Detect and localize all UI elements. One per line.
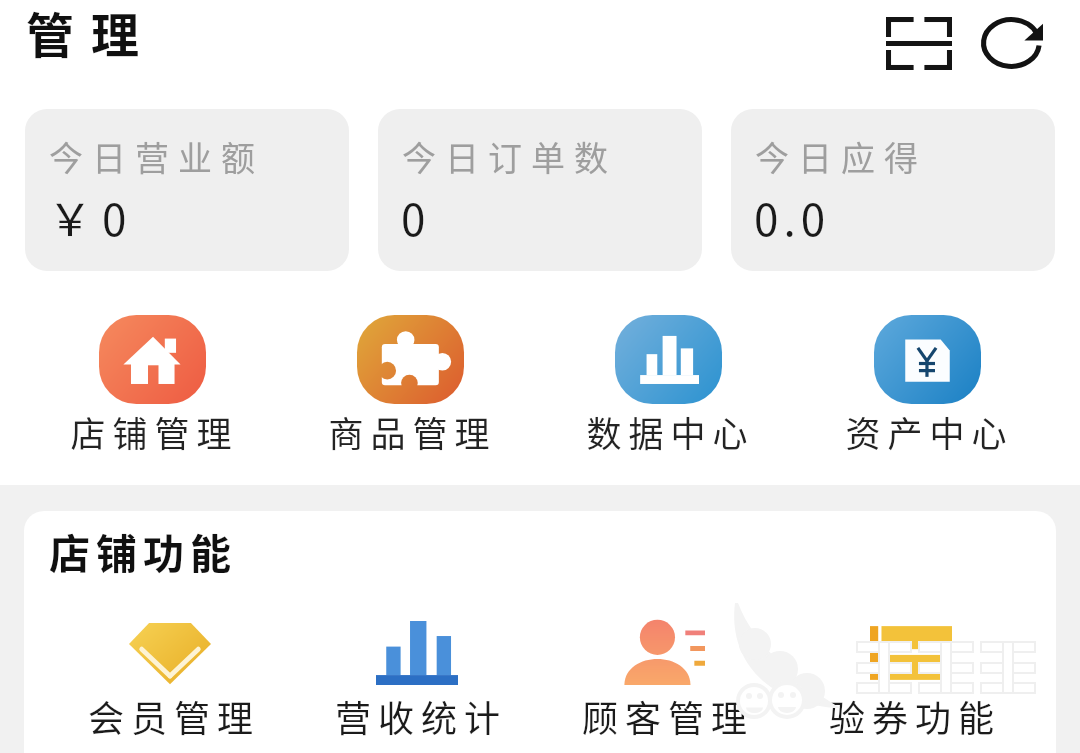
button[interactable]: 会员管理 xyxy=(46,621,293,742)
staticText: 今日应得 xyxy=(755,132,927,181)
staticText: 今日订单数 xyxy=(402,132,617,181)
staticText: 0 xyxy=(401,185,436,249)
staticText: 店铺管理 xyxy=(70,406,239,457)
button[interactable]: 店铺管理 xyxy=(23,315,281,457)
button[interactable]: 验券功能 xyxy=(787,621,1034,742)
staticText: 营收统计 xyxy=(335,690,508,742)
button[interactable]: 营收统计 xyxy=(293,621,540,742)
staticText: 会员管理 xyxy=(88,690,261,742)
staticText: 资产中心 xyxy=(845,406,1014,457)
button[interactable]: Refresh xyxy=(967,6,1057,80)
button[interactable]: 今日订单数 xyxy=(378,109,702,271)
staticText: 商品管理 xyxy=(328,406,497,457)
button[interactable]: Scan xyxy=(869,6,969,80)
button[interactable]: 顾客管理 xyxy=(540,621,787,742)
staticText: 验券功能 xyxy=(829,690,1002,742)
button[interactable]: 今日营业额 xyxy=(25,109,349,271)
staticText: 数据中心 xyxy=(586,406,755,457)
staticText: 店铺功能 xyxy=(49,521,237,580)
staticText: 今日营业额 xyxy=(49,132,264,181)
button[interactable]: 资产中心 xyxy=(798,315,1057,457)
staticText: 0.0 xyxy=(754,185,831,249)
button[interactable]: 数据中心 xyxy=(539,315,798,457)
staticText: 管理 xyxy=(26,0,157,67)
staticText: 顾客管理 xyxy=(582,690,755,742)
staticText: ￥0 xyxy=(48,185,137,249)
button[interactable]: 商品管理 xyxy=(281,315,539,457)
button[interactable]: 今日应得 xyxy=(731,109,1055,271)
